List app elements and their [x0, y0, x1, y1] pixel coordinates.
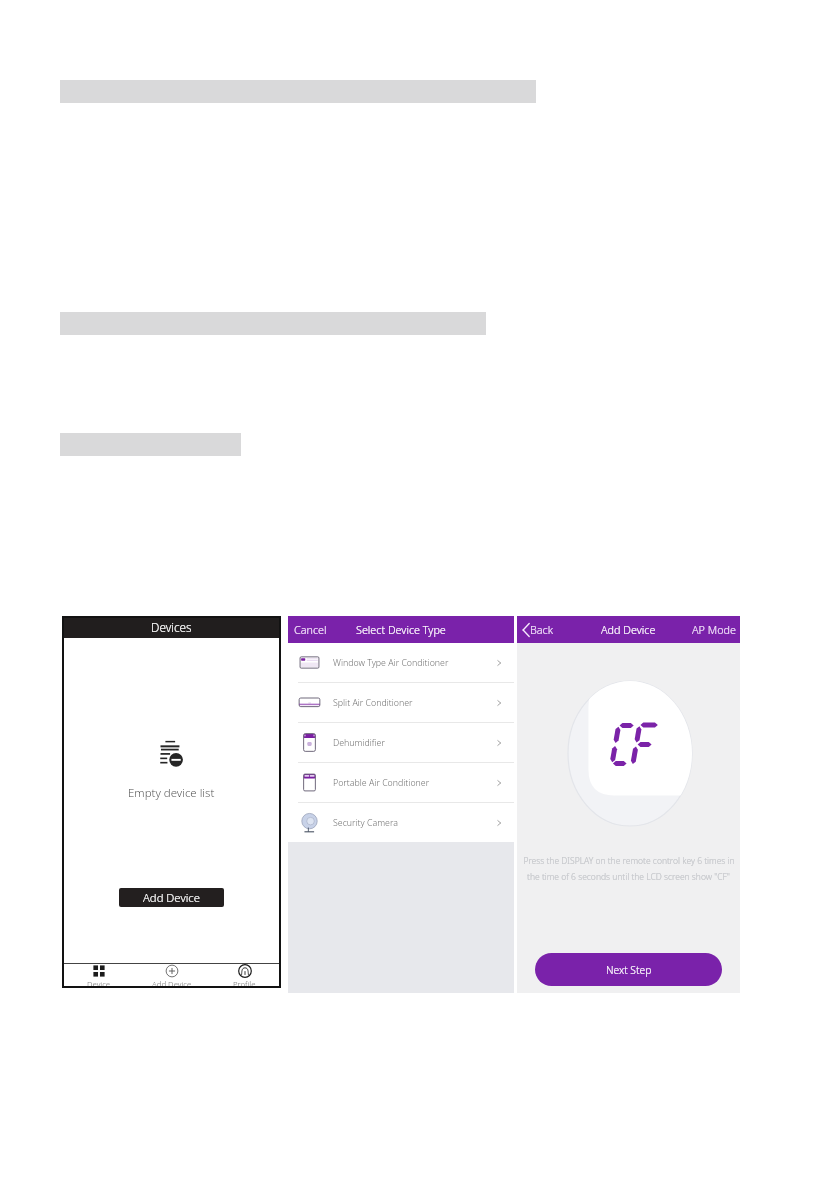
button[interactable]: Cancel	[294, 622, 327, 637]
button[interactable]: Profile	[208, 964, 281, 988]
staticText: Add Device	[601, 622, 656, 637]
staticText: Press the DISPLAY on the remote control …	[523, 855, 735, 867]
staticText: Window Type Air Conditioner	[333, 657, 449, 669]
button[interactable]: Security Camera	[288, 803, 514, 842]
staticText: Profile	[233, 979, 256, 988]
staticText: Portable Air Conditioner	[333, 777, 430, 789]
button[interactable]: Dehumidifier	[288, 723, 514, 762]
staticText: Select Device Type	[356, 622, 446, 637]
button[interactable]: Device	[62, 964, 135, 988]
button[interactable]: Back	[522, 622, 554, 637]
staticText: Add Device	[152, 979, 192, 988]
staticText: Device	[87, 979, 111, 988]
staticText: the time of 6 seconds until the LCD scre…	[527, 871, 730, 883]
staticText: Security Camera	[333, 817, 398, 829]
button[interactable]: Window Type Air Conditioner	[288, 643, 514, 682]
staticText: Empty device list	[128, 785, 215, 801]
staticText: Dehumidifier	[333, 737, 385, 749]
staticText: Split Air Conditioner	[333, 697, 413, 709]
staticText: Next Step	[606, 963, 652, 977]
staticText: Add Device	[143, 890, 200, 905]
button[interactable]: Add Device	[135, 964, 208, 988]
staticText: Devices	[151, 619, 192, 635]
button[interactable]: Split Air Conditioner	[288, 683, 514, 722]
button[interactable]: AP Mode	[692, 622, 736, 637]
button[interactable]: Portable Air Conditioner	[288, 763, 514, 802]
button[interactable]: Next Step	[535, 953, 722, 986]
staticText: Back	[530, 622, 554, 637]
button[interactable]: Add Device	[119, 888, 224, 907]
